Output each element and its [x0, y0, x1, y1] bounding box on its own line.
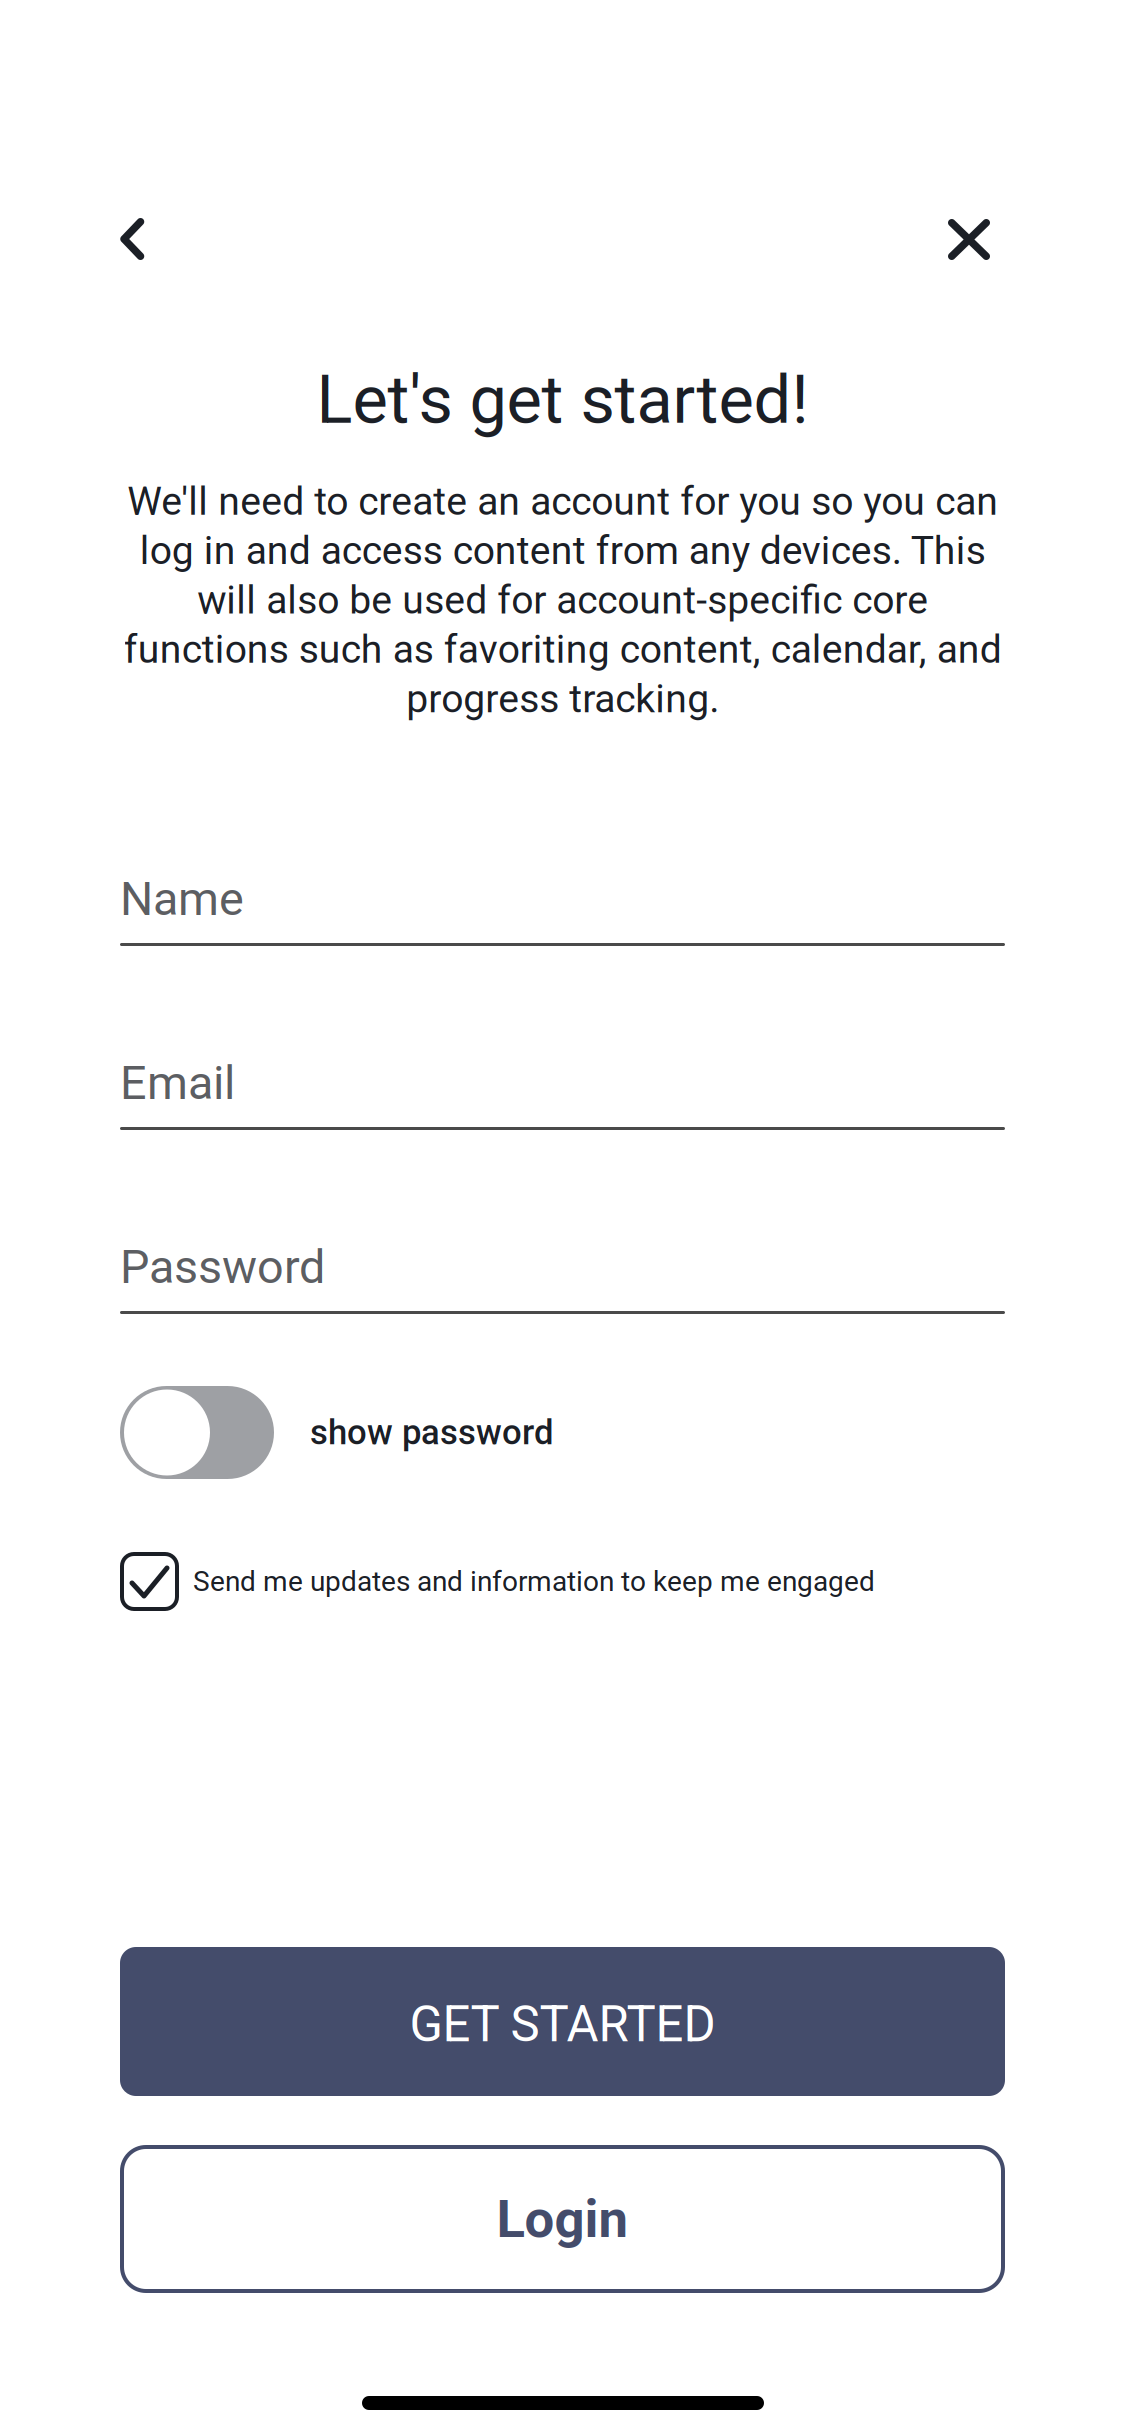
button[interactable]: Password: [120, 1221, 1005, 1314]
staticText: Password: [120, 1240, 325, 1294]
staticText: Name: [120, 872, 244, 926]
button[interactable]: Email: [120, 1037, 1005, 1130]
staticText: We'll need to create an account for you …: [123, 478, 1001, 722]
staticText: show password: [310, 1412, 554, 1453]
button[interactable]: Name: [120, 853, 1005, 946]
staticText: Let's get started!: [316, 361, 808, 439]
staticText: Send me updates and information to keep …: [193, 1565, 875, 1598]
button[interactable]: Login: [120, 2145, 1005, 2293]
button[interactable]: Back: [96, 192, 246, 286]
staticText: Login: [496, 2188, 628, 2250]
button[interactable]: Send me updates and information to keep …: [120, 1552, 1005, 1611]
staticText: Email: [120, 1056, 235, 1110]
button[interactable]: GET STARTED: [120, 1947, 1005, 2096]
button[interactable]: show password: [120, 1386, 1005, 1479]
staticText: GET STARTED: [409, 1996, 715, 2053]
button[interactable]: Close: [894, 192, 1044, 286]
